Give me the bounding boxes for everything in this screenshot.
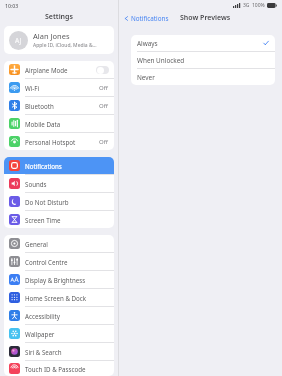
button[interactable]: AJ — [4, 26, 114, 54]
staticText: Wi-Fi — [25, 84, 40, 92]
staticText: Off — [99, 138, 108, 146]
button[interactable]: Siri & Search — [4, 343, 114, 360]
button[interactable]: Control Centre — [4, 253, 114, 270]
staticText: Display & Brightness — [25, 276, 86, 284]
button[interactable]: Display & Brightness — [4, 271, 114, 288]
button[interactable]: Wi-Fi — [4, 79, 114, 96]
button[interactable]: Airplane Mode toggle — [96, 66, 109, 74]
staticText: Personal Hotspot — [25, 138, 76, 146]
button[interactable]: Do Not Disturb — [4, 193, 114, 210]
staticText: Never — [137, 73, 155, 82]
button[interactable]: Bluetooth — [4, 97, 114, 114]
button[interactable]: Mobile Data — [4, 115, 114, 132]
staticText: Mobile Data — [25, 120, 61, 128]
staticText: Off — [99, 102, 108, 110]
button[interactable]: Touch ID & Passcode — [4, 361, 114, 376]
staticText: Bluetooth — [25, 102, 54, 110]
staticText: Settings — [45, 12, 73, 22]
staticText: Alan Jones — [33, 31, 70, 41]
staticText: Show Previews — [180, 13, 231, 23]
staticText: Sounds — [25, 180, 47, 188]
staticText: 100% — [252, 2, 265, 9]
staticText: Always — [137, 39, 158, 48]
staticText: Off — [99, 84, 108, 92]
staticText: AJ — [15, 36, 22, 45]
button[interactable]: Sounds — [4, 175, 114, 192]
staticText: Airplane Mode — [25, 66, 68, 74]
staticText: Siri & Search — [25, 348, 62, 356]
button[interactable]: Notifications — [119, 12, 172, 25]
staticText: Accessibility — [25, 312, 60, 320]
staticText: 10:03 — [5, 2, 19, 9]
staticText: Wallpaper — [25, 330, 55, 338]
staticText: General — [25, 240, 48, 248]
button[interactable]: Wallpaper — [4, 325, 114, 342]
staticText: Do Not Disturb — [25, 198, 69, 206]
staticText: Notifications — [25, 162, 62, 170]
staticText: Notifications — [131, 14, 169, 23]
button[interactable]: Personal Hotspot — [4, 133, 114, 150]
button[interactable]: Home Screen & Dock — [4, 289, 114, 306]
button[interactable]: Accessibility — [4, 307, 114, 324]
staticText: Home Screen & Dock — [25, 294, 87, 302]
button[interactable]: Notifications — [4, 157, 114, 174]
button[interactable]: Airplane Mode — [4, 61, 114, 78]
button[interactable]: Never — [131, 69, 275, 85]
button[interactable]: Always — [131, 35, 275, 51]
staticText: Control Centre — [25, 258, 68, 266]
staticText: Apple ID, iCloud, Media &... — [33, 42, 97, 49]
button[interactable]: Screen Time — [4, 211, 114, 228]
staticText: 3G — [243, 2, 250, 9]
staticText: Touch ID & Passcode — [25, 365, 86, 373]
button[interactable]: General — [4, 235, 114, 252]
button[interactable]: When Unlocked — [131, 52, 275, 68]
staticText: When Unlocked — [137, 56, 185, 65]
staticText: Screen Time — [25, 216, 61, 224]
